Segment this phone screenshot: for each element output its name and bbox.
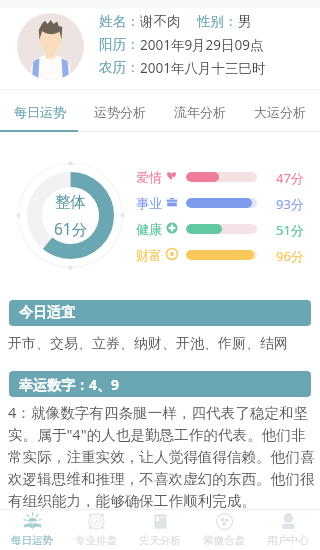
staticText: 农历： <box>99 59 140 76</box>
staticText: 4：就像数字有四条腿一样，四代表了稳定和坚实。属于"4"的人也是勤恳工作的代表。… <box>8 402 318 511</box>
button[interactable]: 每日运势 <box>0 95 80 129</box>
button[interactable]: 专业排盘 <box>64 509 128 550</box>
staticText: 姓名： <box>99 13 140 30</box>
staticText: 性别： <box>197 13 238 30</box>
button[interactable]: 流年分析 <box>160 95 240 129</box>
button[interactable]: 用户中心 <box>256 509 320 550</box>
staticText: 阳历： <box>99 36 140 53</box>
staticText: 谢不肉 <box>140 13 181 30</box>
staticText: 事业 <box>136 195 162 211</box>
staticText: 每日运势 <box>11 534 53 547</box>
staticText: 先天分析 <box>139 534 181 547</box>
staticText: 财富 <box>136 247 162 263</box>
staticText: 幸运数字：4、9 <box>19 375 120 394</box>
staticText: 流年分析 <box>174 104 226 120</box>
button[interactable]: 先天分析 <box>128 509 192 550</box>
button[interactable]: 运势分析 <box>80 95 160 129</box>
button[interactable]: 每日运势 <box>0 509 64 550</box>
staticText: 开市、交易、立券、纳财、开池、作厕、结网 <box>8 335 288 353</box>
staticText: 健康 <box>136 221 162 237</box>
staticText: 专业排盘 <box>75 534 117 547</box>
staticText: 今日适宜 <box>19 304 75 322</box>
staticText: 2001年八月十三巳时 <box>140 59 266 77</box>
button[interactable]: 紫微合盘 <box>192 509 256 550</box>
staticText: 用户中心 <box>267 534 309 547</box>
staticText: 大运分析 <box>254 104 306 120</box>
staticText: 紫微合盘 <box>203 534 245 547</box>
staticText: 61分 <box>54 218 88 239</box>
staticText: 整体 <box>55 192 86 212</box>
staticText: 93分 <box>276 195 304 213</box>
staticText: 47分 <box>276 169 304 187</box>
staticText: 爱情 <box>136 169 162 185</box>
staticText: 96分 <box>276 247 304 265</box>
staticText: 2001年9月29日09点 <box>140 36 264 54</box>
staticText: 51分 <box>276 221 304 239</box>
staticText: 运势分析 <box>94 104 146 120</box>
staticText: 每日运势 <box>14 104 66 120</box>
staticText: 男 <box>238 13 252 30</box>
button[interactable]: 大运分析 <box>240 95 320 129</box>
